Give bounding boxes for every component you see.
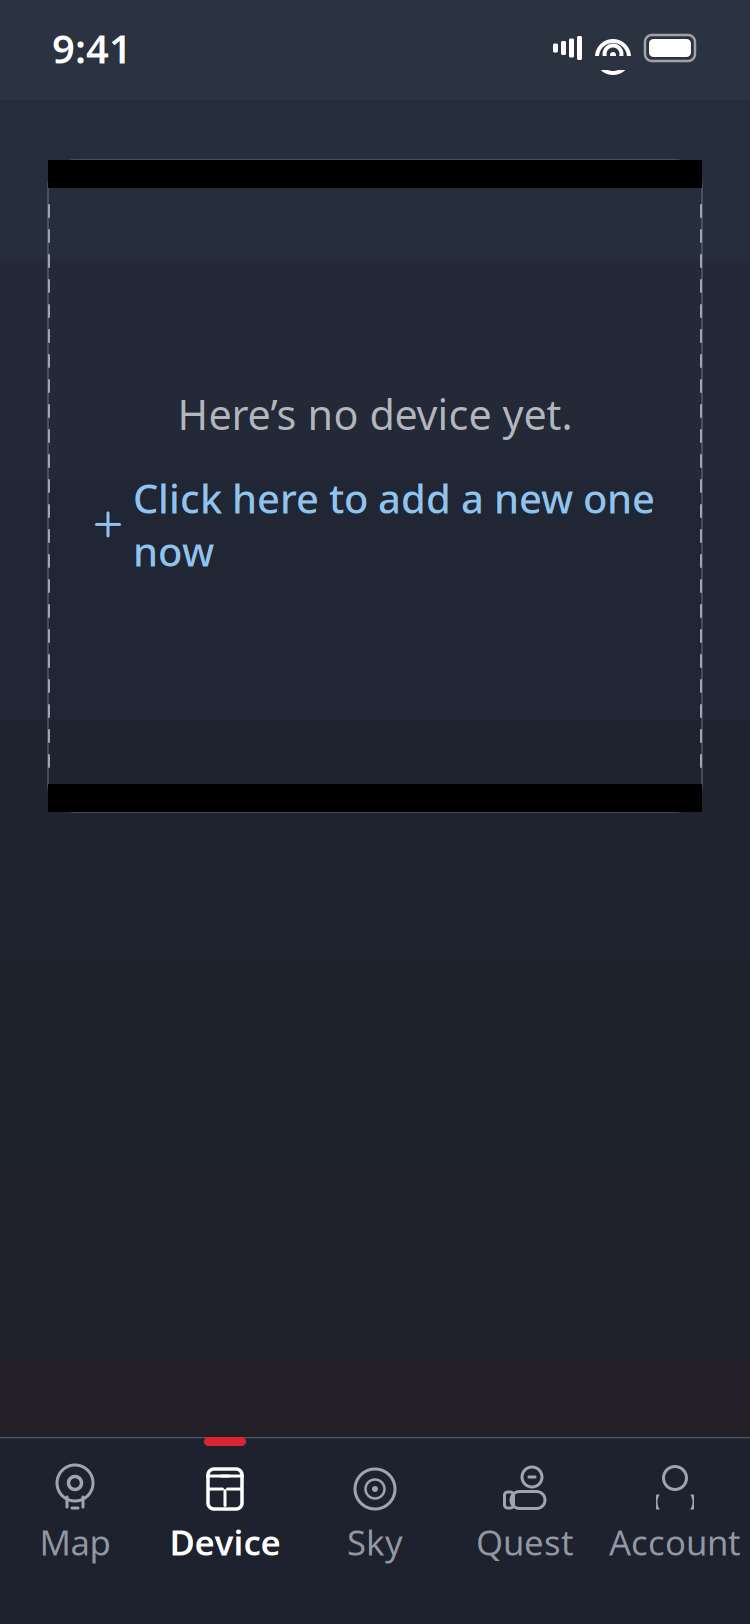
button[interactable]: Device <box>150 1437 300 1624</box>
staticText: Quest <box>476 1519 574 1565</box>
button[interactable]: Map <box>0 1437 150 1624</box>
button[interactable]: Account <box>600 1437 750 1624</box>
button[interactable]: Quest <box>450 1437 600 1624</box>
staticText: Click here to add a new one now <box>133 471 655 577</box>
staticText: Here’s no device yet. <box>177 386 572 441</box>
staticText: Account <box>609 1519 741 1565</box>
staticText: Sky <box>347 1519 403 1565</box>
button[interactable]: Click here to add a new one now <box>83 463 667 585</box>
staticText: Device <box>169 1519 280 1565</box>
staticText: Map <box>39 1519 110 1565</box>
button[interactable]: Sky <box>300 1437 450 1624</box>
staticText: 9:41 <box>52 21 132 74</box>
